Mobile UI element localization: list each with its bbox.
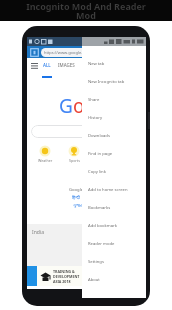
button[interactable]: Bookmarks — [82, 199, 146, 217]
staticText: Google offered in: — [69, 187, 105, 193]
button[interactable]: Weather — [33, 145, 57, 163]
button[interactable]: History — [82, 109, 146, 127]
staticText: About — [88, 277, 100, 283]
staticText: Find in page — [88, 151, 113, 157]
button[interactable]: Find in page — [82, 145, 146, 163]
button[interactable]: https://www.google.com — [41, 48, 83, 57]
button[interactable]: Sports — [62, 145, 86, 163]
button[interactable]: Settings — [82, 253, 146, 271]
button[interactable]: About — [82, 271, 146, 289]
staticText: IMAGES — [58, 62, 75, 68]
button[interactable]: Share — [82, 91, 146, 109]
button[interactable]: Copy link — [82, 163, 146, 181]
button[interactable]: Downloads — [82, 127, 146, 145]
button[interactable]: Advertising — [27, 255, 116, 261]
button[interactable]: Add bookmark — [82, 217, 146, 235]
staticText: Add bookmark — [88, 223, 118, 229]
staticText: India — [32, 229, 44, 236]
staticText: g — [97, 93, 109, 119]
button[interactable]: Add to home screen — [82, 181, 146, 199]
staticText: ALL — [43, 62, 51, 68]
staticText: Copy link — [88, 169, 106, 175]
staticText: ASIA 2018 — [53, 279, 71, 284]
button[interactable]: Reader mode — [82, 235, 146, 253]
button[interactable]: New tab — [82, 55, 146, 73]
staticText: New tab — [88, 61, 105, 67]
staticText: DEVELOPMENT — [53, 274, 80, 279]
staticText: हिन्दी मराठी বাংলা — [72, 195, 102, 201]
staticText: Bookmarks — [88, 205, 111, 211]
button[interactable]: Settings — [27, 245, 116, 251]
button[interactable] — [31, 125, 142, 138]
staticText: https://www.google.com — [44, 50, 83, 55]
staticText: Settings — [88, 259, 104, 265]
staticText: Sports — [69, 158, 80, 163]
staticText: Share — [88, 97, 100, 103]
staticText: Incognito Mod And Reader Mod — [0, 0, 172, 21]
staticText: Weather — [38, 158, 53, 163]
button[interactable]: ALL — [42, 62, 52, 68]
button[interactable]: IMAGES — [57, 62, 76, 68]
staticText: New Incognito tab — [88, 79, 125, 85]
staticText: o — [73, 93, 85, 119]
staticText: Downloads — [88, 133, 110, 139]
button[interactable]: New Incognito tab — [82, 73, 146, 91]
button[interactable]: TRAINING & — [27, 266, 146, 286]
button[interactable]: Main menu — [31, 63, 38, 69]
staticText: Add to home screen — [88, 187, 128, 193]
button[interactable]: Incognito mode — [29, 47, 40, 58]
staticText: Reader mode — [88, 241, 115, 247]
staticText: o — [85, 93, 97, 119]
staticText: History — [88, 115, 103, 121]
staticText: TRAINING & — [53, 269, 75, 274]
staticText: G — [59, 93, 73, 119]
staticText: ગુજરાતી தமிழ் — [73, 203, 100, 209]
